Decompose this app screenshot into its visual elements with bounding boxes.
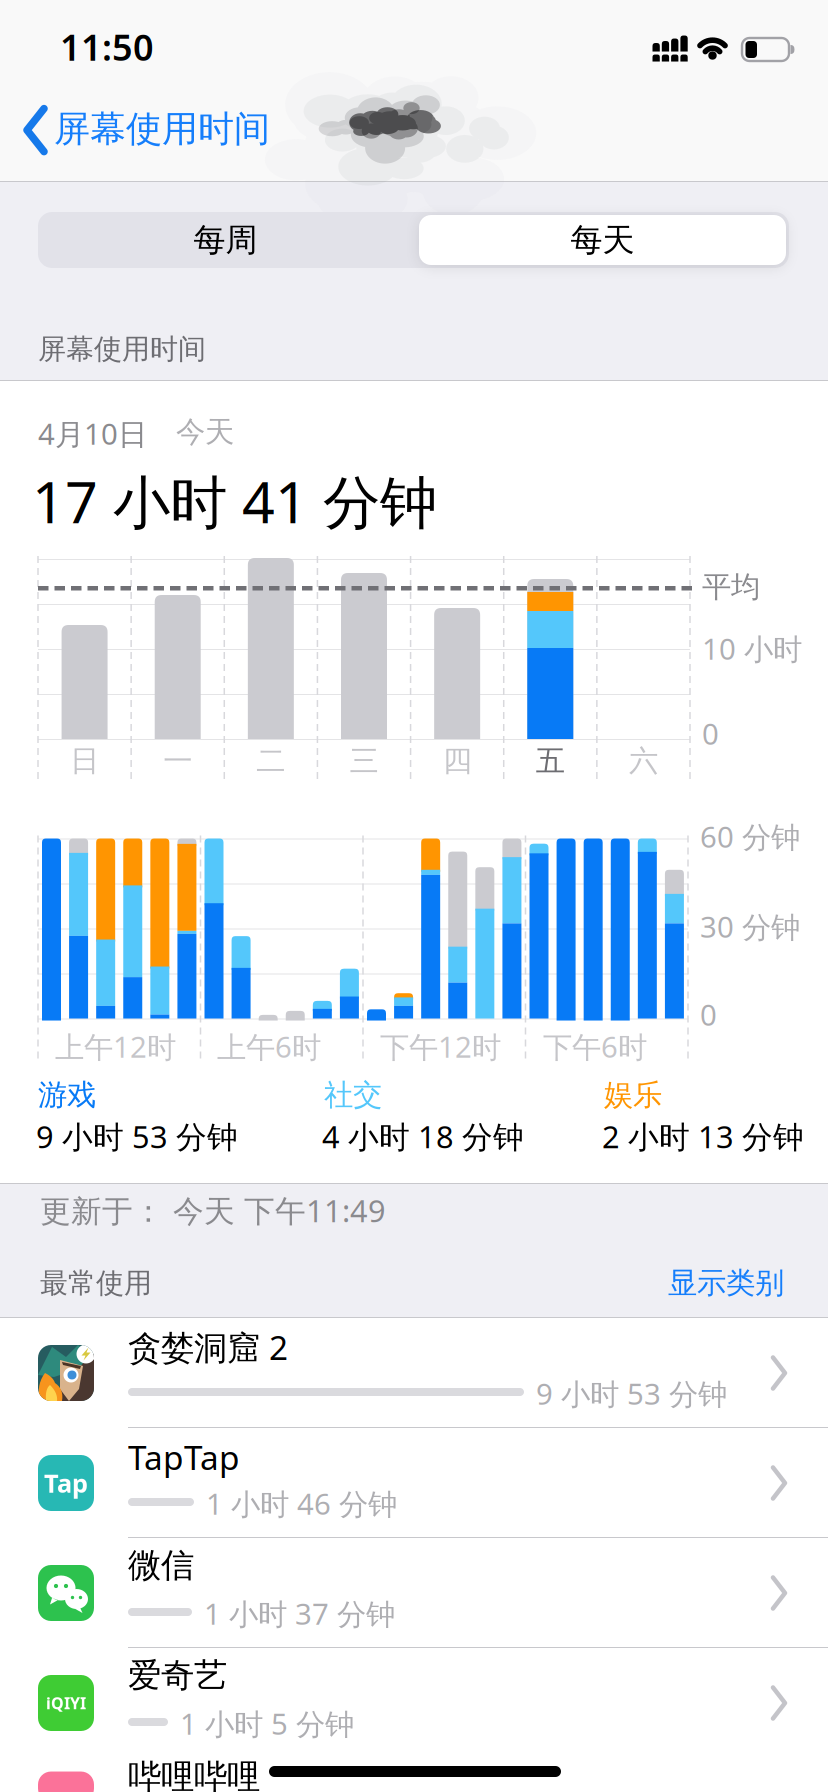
button[interactable]: 贪婪洞窟 2 [0,1318,828,1428]
staticText: 微信 [128,1545,194,1586]
staticText: 更新于： 今天 下午11:49 [40,1190,386,1231]
button[interactable]: 显示类别 [668,1265,784,1301]
staticText: 60 分钟 [700,817,800,856]
staticText: 0 [700,995,717,1034]
staticText: 4 小时 18 分钟 [322,1116,524,1157]
staticText: Tap [44,1466,88,1500]
staticText: 最常使用 [40,1266,152,1300]
staticText: 下午6时 [543,1027,647,1066]
staticText: 五 [536,743,565,779]
staticText: 游戏 [38,1077,96,1113]
button[interactable]: iQIYI [0,1648,828,1758]
staticText: 一 [163,743,192,779]
staticText: 屏幕使用时间 [54,107,270,151]
staticText: 六 [629,743,658,779]
button[interactable]: 每周 [38,212,413,268]
staticText: iQIYI [46,1692,86,1714]
staticText: 1 小时 46 分钟 [206,1484,397,1523]
staticText: 2 小时 13 分钟 [602,1116,804,1157]
staticText: 上午6时 [217,1027,321,1066]
button[interactable]: Tap [0,1428,828,1538]
staticText: 0 [702,714,719,753]
staticText: 三 [349,743,378,779]
staticText: 二 [256,743,285,779]
staticText: 下午12时 [380,1027,501,1066]
staticText: 30 分钟 [700,907,800,946]
staticText: 娱乐 [604,1077,662,1113]
staticText: 社交 [324,1077,382,1113]
staticText: 每周 [193,220,257,260]
button[interactable]: 每天 [419,215,786,265]
staticText: 日 [70,743,99,779]
staticText: 17 小时 41 分钟 [32,463,437,539]
staticText: 爱奇艺 [128,1655,227,1696]
staticText: 1 小时 37 分钟 [204,1594,395,1633]
staticText: 今天 [176,414,234,450]
staticText: 屏幕使用时间 [38,332,206,366]
staticText: 9 小时 53 分钟 [36,1116,238,1157]
staticText: TapTap [128,1435,240,1479]
staticText: 10 小时 [702,629,802,668]
staticText: 1 小时 5 分钟 [180,1704,354,1743]
staticText: 9 小时 53 分钟 [536,1374,727,1413]
button[interactable]: 屏幕使用时间 [27,108,270,152]
staticText: 贪婪洞窟 2 [128,1325,288,1369]
staticText: 11:50 [60,23,154,71]
staticText: 四 [443,743,472,779]
button[interactable]: 哔哩哔哩 [0,1758,828,1792]
button[interactable]: 微信 [0,1538,828,1648]
staticText: 显示类别 [668,1265,784,1301]
staticText: 每天 [570,220,634,260]
staticText: 哔哩哔哩 [128,1756,260,1792]
staticText: 平均 [702,569,760,605]
staticText: 4月10日 [38,414,147,453]
staticText: 上午12时 [55,1027,176,1066]
